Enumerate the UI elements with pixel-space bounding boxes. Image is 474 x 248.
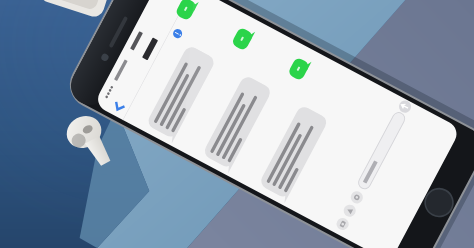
button[interactable]: Photo of a phone showing blocked SMS mes… xyxy=(0,0,474,248)
